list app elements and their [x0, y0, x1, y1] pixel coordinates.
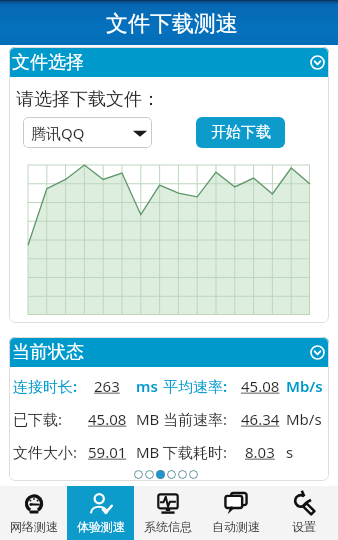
button[interactable]: 系统信息	[134, 486, 202, 540]
staticText: s	[286, 442, 294, 462]
staticText: 下载耗时:	[163, 442, 228, 462]
staticText: 文件选择	[12, 51, 84, 74]
button[interactable]: 设置	[270, 486, 338, 540]
button[interactable]: 自动测速	[202, 486, 270, 540]
other: Collapse section	[310, 55, 325, 70]
staticText: 网络测速	[10, 519, 58, 534]
staticText: 已下载:	[13, 409, 63, 429]
staticText: ms	[136, 376, 158, 396]
staticText: 设置	[292, 519, 316, 534]
staticText: 系统信息	[144, 519, 192, 534]
staticText: 8.03	[245, 442, 275, 462]
staticText: 当前状态	[12, 341, 84, 364]
staticText: 文件下载测速	[106, 10, 238, 38]
staticText: 45.08	[241, 376, 280, 396]
button[interactable]: 文件选择	[9, 47, 329, 77]
staticText: Mb/s	[286, 409, 322, 429]
staticText: 263	[94, 376, 120, 396]
staticText: 46.34	[241, 409, 280, 429]
staticText: 连接时长:	[13, 376, 78, 396]
button[interactable]: 体验测速	[67, 486, 134, 540]
button[interactable]: 开始下载	[196, 117, 285, 148]
staticText: MB	[136, 442, 160, 462]
button[interactable]: 当前状态	[9, 337, 329, 367]
staticText: 体验测速	[77, 519, 125, 534]
button[interactable]: 网络测速	[0, 486, 67, 540]
button[interactable]: 腾讯QQ	[23, 117, 152, 148]
staticText: 59.01	[88, 442, 127, 462]
staticText: 文件大小:	[13, 442, 78, 462]
staticText: 自动测速	[212, 519, 260, 534]
staticText: 腾讯QQ	[31, 123, 85, 143]
staticText: Mb/s	[286, 376, 323, 396]
staticText: 当前速率:	[163, 409, 228, 429]
staticText: 平均速率:	[163, 376, 228, 396]
staticText: 开始下载	[211, 123, 271, 142]
staticText: 请选择下载文件：	[16, 88, 160, 111]
other: Collapse section	[310, 345, 325, 360]
staticText: 45.08	[88, 409, 127, 429]
staticText: MB	[136, 409, 160, 429]
